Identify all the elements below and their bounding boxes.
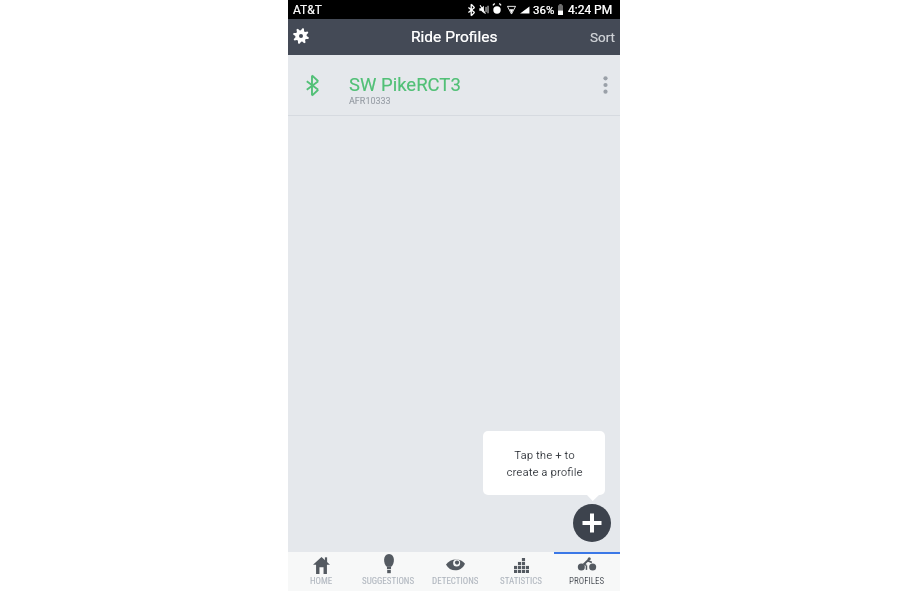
staticText: SW PikeRCT3 bbox=[349, 74, 461, 96]
staticText: SUGGESTIONS bbox=[362, 576, 415, 587]
staticText: AT&T bbox=[293, 3, 322, 17]
staticText: AFR10333 bbox=[349, 96, 391, 107]
button[interactable]: Add profile bbox=[573, 504, 611, 542]
staticText: Ride Profiles bbox=[411, 28, 498, 46]
staticText: HOME bbox=[310, 576, 333, 587]
button[interactable]: More options bbox=[590, 55, 620, 115]
staticText: PROFILES bbox=[569, 576, 605, 587]
staticText: Tap the + to create a profile bbox=[506, 448, 583, 479]
staticText: 4:24 PM bbox=[568, 3, 613, 17]
button[interactable]: Sort bbox=[590, 19, 616, 55]
staticText: STATISTICS bbox=[500, 576, 542, 587]
button[interactable]: HOME bbox=[288, 552, 355, 591]
staticText: 36% bbox=[533, 3, 555, 16]
button[interactable]: SUGGESTIONS bbox=[355, 552, 422, 591]
staticText: Sort bbox=[590, 29, 616, 45]
button[interactable]: PROFILES bbox=[554, 552, 620, 591]
button[interactable]: STATISTICS bbox=[488, 552, 554, 591]
staticText: DETECTIONS bbox=[432, 576, 479, 587]
button[interactable]: Tap the + to create a profile bbox=[483, 431, 605, 495]
button[interactable]: DETECTIONS bbox=[422, 552, 488, 591]
button[interactable]: Settings bbox=[288, 19, 317, 55]
button[interactable]: SW PikeRCT3 bbox=[288, 55, 620, 115]
